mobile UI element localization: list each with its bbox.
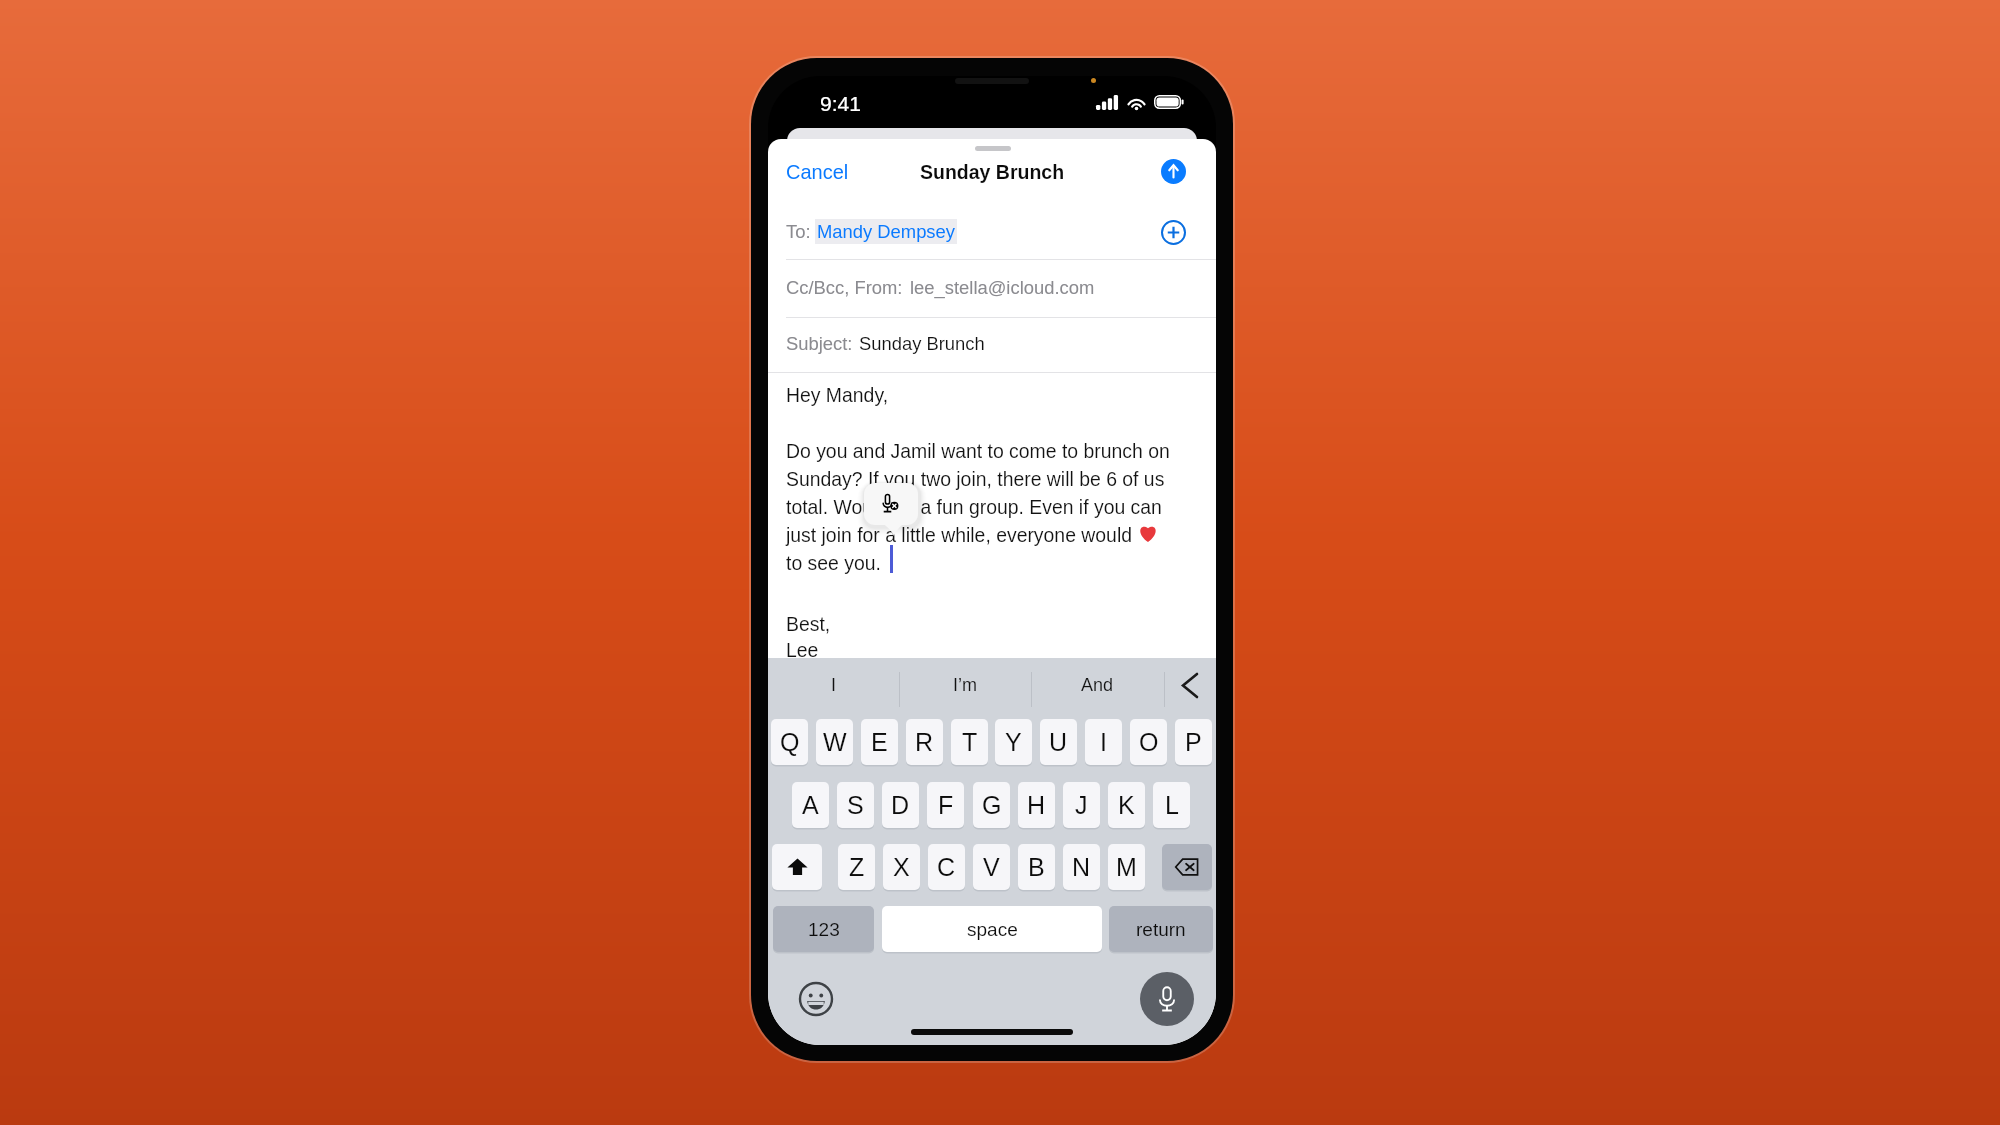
button[interactable]: H xyxy=(1018,782,1055,828)
button[interactable]: I’m xyxy=(899,659,1031,711)
button[interactable]: Add recipient xyxy=(1161,220,1186,245)
button[interactable]: W xyxy=(816,719,853,765)
staticText: L xyxy=(1165,791,1179,819)
button[interactable]: R xyxy=(906,719,943,765)
button[interactable]: Z xyxy=(838,844,875,890)
button[interactable] xyxy=(768,318,1216,372)
staticText: I xyxy=(1100,728,1107,756)
staticText: D xyxy=(891,791,910,819)
button[interactable]: K xyxy=(1108,782,1145,828)
button[interactable]: return xyxy=(1109,906,1213,952)
button[interactable]: Dictate xyxy=(1140,972,1194,1026)
button[interactable]: S xyxy=(837,782,874,828)
button[interactable]: And xyxy=(1031,659,1164,711)
button[interactable]: O xyxy=(1130,719,1167,765)
button[interactable]: L xyxy=(1153,782,1190,828)
staticText: S xyxy=(847,791,864,819)
staticText: M xyxy=(1116,853,1137,881)
staticText: G xyxy=(982,791,1002,819)
staticText: O xyxy=(1139,728,1159,756)
button[interactable]: Stop dictation xyxy=(864,483,918,525)
button[interactable]: F xyxy=(927,782,964,828)
button[interactable]: I xyxy=(1085,719,1122,765)
staticText: I xyxy=(831,675,837,695)
staticText: Cancel xyxy=(786,161,849,183)
button[interactable] xyxy=(768,205,1216,259)
button[interactable]: J xyxy=(1063,782,1100,828)
button[interactable]: Shift xyxy=(772,844,822,890)
button[interactable]: Emoji xyxy=(798,981,834,1017)
staticText: Y xyxy=(1005,728,1022,756)
staticText: space xyxy=(967,919,1018,940)
button[interactable]: P xyxy=(1175,719,1212,765)
staticText: Sunday Brunch xyxy=(859,333,985,354)
staticText: lee_stella@icloud.com xyxy=(910,277,1095,298)
staticText: P xyxy=(1185,728,1202,756)
button[interactable]: Cancel xyxy=(780,157,855,187)
staticText: X xyxy=(893,853,910,881)
staticText: Hey Mandy, Do you and Jamil want to come… xyxy=(786,384,1170,574)
button[interactable] xyxy=(768,373,1216,658)
staticText: K xyxy=(1118,791,1135,819)
button[interactable]: Y xyxy=(995,719,1032,765)
staticText: return xyxy=(1136,919,1186,940)
button[interactable]: Backspace xyxy=(1162,844,1212,890)
button[interactable]: N xyxy=(1063,844,1100,890)
button[interactable]: U xyxy=(1040,719,1077,765)
button[interactable]: C xyxy=(928,844,965,890)
staticText: B xyxy=(1028,853,1045,881)
button[interactable]: space xyxy=(882,906,1102,952)
staticText: I’m xyxy=(953,675,977,695)
button[interactable]: I xyxy=(768,659,899,711)
staticText: Q xyxy=(780,728,800,756)
staticText: E xyxy=(871,728,888,756)
staticText: Mandy Dempsey xyxy=(817,221,955,242)
staticText: V xyxy=(983,853,1000,881)
button[interactable]: Undo xyxy=(1164,659,1216,711)
staticText: Sunday Brunch xyxy=(920,161,1065,183)
button[interactable]: T xyxy=(951,719,988,765)
staticText: And xyxy=(1081,675,1114,695)
button[interactable]: 123 xyxy=(773,906,874,952)
staticText: T xyxy=(962,728,978,756)
staticText: C xyxy=(937,853,956,881)
button[interactable]: V xyxy=(973,844,1010,890)
staticText: To: xyxy=(786,221,811,242)
staticText: N xyxy=(1072,853,1091,881)
button[interactable]: B xyxy=(1018,844,1055,890)
staticText: H xyxy=(1027,791,1046,819)
button[interactable]: G xyxy=(973,782,1010,828)
staticText: J xyxy=(1075,791,1088,819)
staticText: W xyxy=(823,728,847,756)
button[interactable]: X xyxy=(883,844,920,890)
staticText: 123 xyxy=(808,919,840,940)
staticText: U xyxy=(1049,728,1068,756)
button[interactable]: M xyxy=(1108,844,1145,890)
button[interactable]: A xyxy=(792,782,829,828)
staticText: Cc/Bcc, From: xyxy=(786,277,903,298)
button[interactable]: D xyxy=(882,782,919,828)
staticText: A xyxy=(802,791,819,819)
staticText: F xyxy=(938,791,954,819)
button[interactable]: Send xyxy=(1161,159,1186,184)
staticText: Z xyxy=(849,853,865,881)
button[interactable] xyxy=(768,260,1216,317)
staticText: R xyxy=(915,728,934,756)
staticText: 9:41 xyxy=(820,92,861,115)
button[interactable]: E xyxy=(861,719,898,765)
staticText: Best, Lee xyxy=(786,613,831,661)
staticText: Subject: xyxy=(786,333,853,354)
button[interactable]: Q xyxy=(771,719,808,765)
